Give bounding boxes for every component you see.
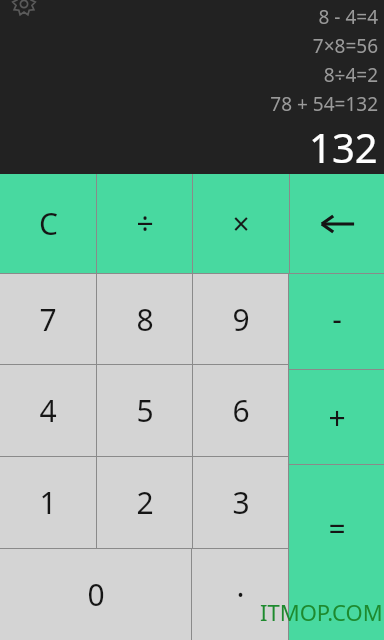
staticText: ×	[232, 203, 250, 244]
button[interactable]: =	[289, 465, 384, 640]
button[interactable]: Backspace	[290, 174, 384, 273]
staticText: ITMOP.COM	[260, 597, 383, 627]
staticText: 9	[232, 299, 250, 340]
button[interactable]: +	[289, 370, 384, 464]
staticText: 8	[136, 299, 154, 340]
button[interactable]: 8	[97, 274, 192, 364]
button[interactable]: 2	[97, 457, 192, 548]
staticText: -	[332, 298, 342, 339]
staticText: 3	[232, 482, 250, 523]
button[interactable]: Settings	[11, 0, 37, 17]
button[interactable]: ÷	[97, 174, 192, 273]
staticText: 7×8=56	[312, 33, 378, 59]
button[interactable]: 1	[0, 457, 96, 548]
staticText: 1	[39, 482, 57, 523]
staticText: =	[328, 508, 346, 549]
staticText: +	[328, 397, 346, 438]
staticText: 2	[136, 482, 154, 523]
button[interactable]: -	[289, 274, 384, 369]
staticText: 8÷4=2	[323, 62, 378, 88]
button[interactable]: 3	[193, 457, 288, 548]
staticText: 8 - 4=4	[318, 4, 378, 30]
button[interactable]: 9	[193, 274, 288, 364]
button[interactable]: ×	[193, 174, 289, 273]
button[interactable]: 7	[0, 274, 96, 364]
button[interactable]: 5	[97, 365, 192, 456]
button[interactable]: .	[192, 549, 288, 640]
staticText: 7	[39, 299, 57, 340]
staticText: 78 + 54=132	[270, 91, 378, 117]
button[interactable]: 6	[193, 365, 288, 456]
staticText: 4	[39, 390, 57, 431]
button[interactable]: 0	[0, 549, 191, 640]
staticText: 132	[309, 120, 378, 172]
staticText: 6	[232, 390, 250, 431]
staticText: ÷	[136, 203, 154, 244]
staticText: .	[236, 565, 245, 606]
staticText: 5	[136, 390, 154, 431]
staticText: 0	[87, 574, 105, 615]
staticText: C	[39, 203, 58, 244]
button[interactable]: 4	[0, 365, 96, 456]
button[interactable]: C	[0, 174, 96, 273]
